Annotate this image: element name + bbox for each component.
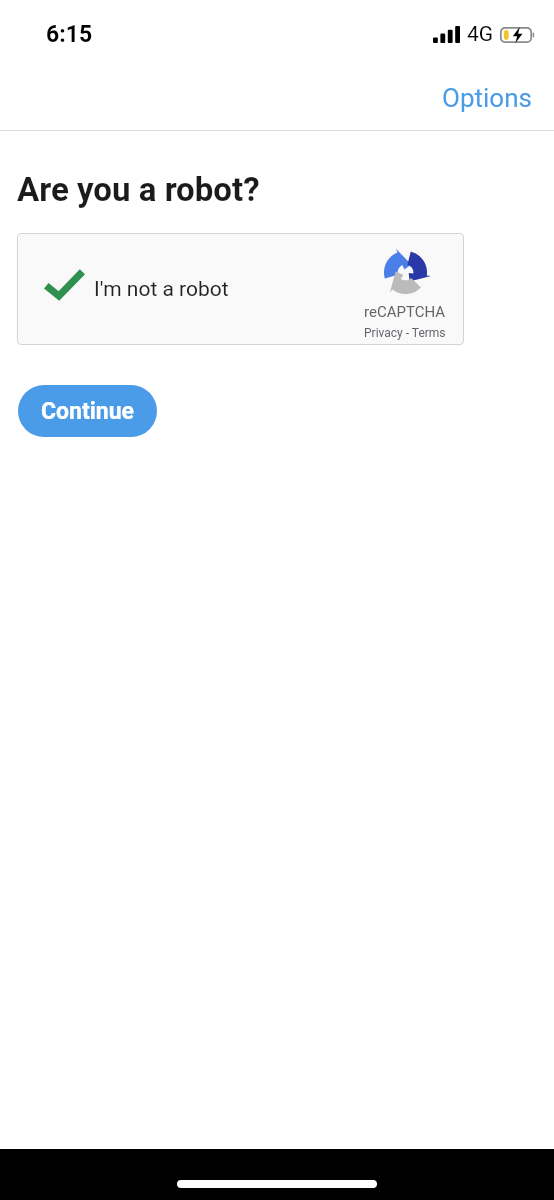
other: Cellular signal strength [433,26,460,43]
staticText: Privacy - Terms [364,326,446,340]
other: reCAPTCHA logo [383,250,428,295]
staticText: reCAPTCHA [364,303,446,321]
staticText: I'm not a robot [94,277,229,302]
button[interactable]: reCAPTCHA logo [364,250,446,340]
staticText: Are you a robot? [17,170,260,209]
staticText: 6:15 [46,21,93,48]
button[interactable]: I'm not a robot [17,233,464,345]
staticText: Options [442,83,532,113]
staticText: Continue [41,398,135,425]
staticText: 4G [467,22,494,47]
other: Battery charging [500,27,535,43]
button[interactable]: Options [418,73,554,123]
button[interactable]: Continue [18,385,157,437]
